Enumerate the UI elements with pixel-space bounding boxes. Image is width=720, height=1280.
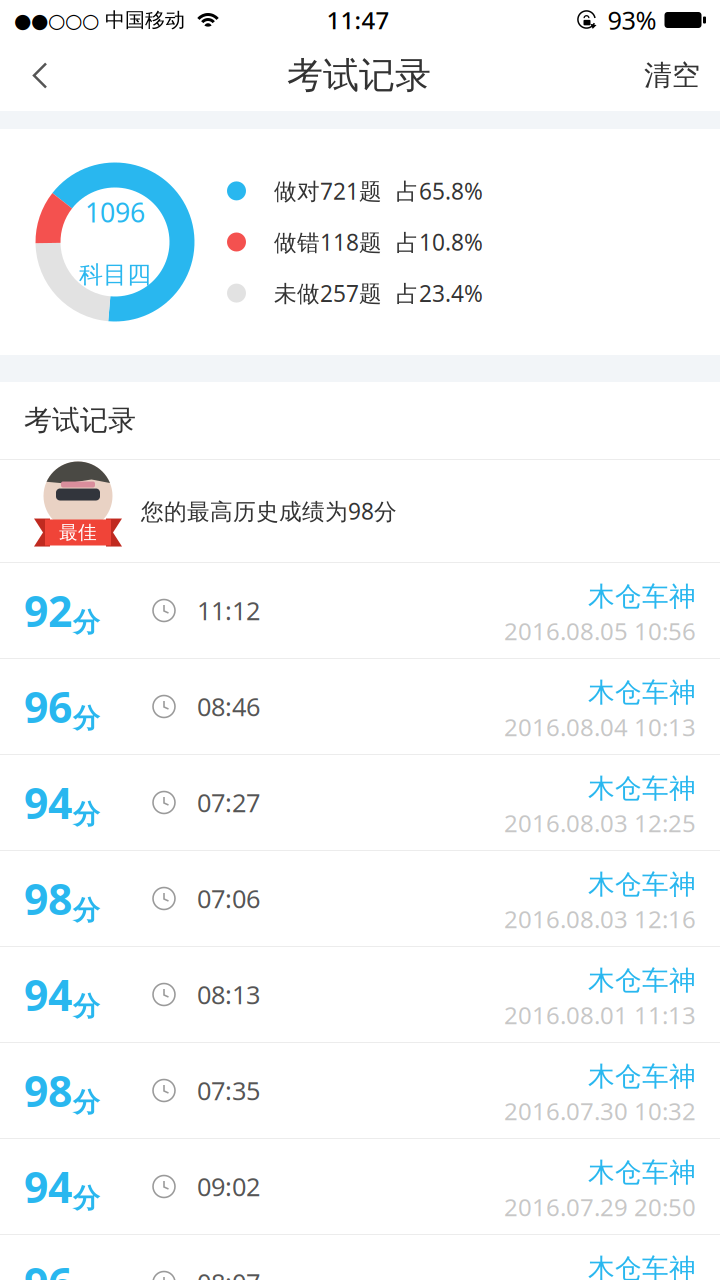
staticText: 96 [24,1254,72,1280]
staticText: 做错118题 占10.8% [274,227,483,257]
staticText: 09:02 [197,1170,260,1203]
staticText: 木仓车神 [588,964,696,997]
button[interactable]: 96 [0,1235,720,1280]
staticText: 98 [24,870,72,927]
staticText: 木仓车神 [588,676,696,709]
staticText: 木仓车神 [588,1252,696,1280]
button[interactable]: Back [20,52,92,98]
button[interactable]: 94 [0,947,720,1043]
staticText: 94 [24,966,72,1023]
staticText: 2016.08.03 12:16 [504,903,696,935]
staticText: 2016.07.29 20:50 [504,1191,696,1223]
staticText: 分 [73,1086,100,1119]
staticText: 木仓车神 [588,580,696,613]
staticText: 您的最高历史成绩为98分 [141,496,397,526]
button[interactable]: 清空 [626,52,700,98]
staticText: 分 [73,990,100,1023]
staticText: 94 [24,774,72,831]
staticText: 07:35 [197,1074,260,1107]
staticText: 木仓车神 [588,1060,696,1093]
staticText: 2016.07.30 10:32 [504,1095,696,1127]
button[interactable]: 98 [0,851,720,947]
staticText: 08:46 [197,690,260,723]
staticText: 最佳 [59,521,97,544]
staticText: 木仓车神 [588,772,696,805]
staticText: 未做257题 占23.4% [274,278,483,308]
staticText: 92 [24,582,72,639]
staticText: 分 [73,702,100,735]
staticText: 08:13 [197,978,260,1011]
staticText: 94 [24,1158,72,1215]
staticText: 分 [73,798,100,831]
staticText: 做对721题 占65.8% [274,176,483,206]
staticText: 木仓车神 [588,1156,696,1189]
staticText: 93% [607,3,656,37]
button[interactable]: 98 [0,1043,720,1139]
staticText: 98 [24,1062,72,1119]
staticText: 08:07 [197,1266,260,1280]
staticText: 11:47 [326,4,389,36]
staticText: 07:27 [197,786,260,819]
staticText: 2016.08.03 12:25 [504,807,696,839]
staticText: 11:12 [197,594,260,627]
staticText: 考试记录 [287,53,431,98]
staticText: 2016.08.05 10:56 [504,615,696,647]
staticText: 分 [73,1182,100,1215]
button[interactable]: 94 [0,1139,720,1235]
staticText: 96 [24,678,72,735]
button[interactable]: 96 [0,659,720,755]
staticText: ●●○○○ 中国移动 [14,8,185,32]
staticText: 木仓车神 [588,868,696,901]
staticText: 2016.08.04 10:13 [504,711,696,743]
button[interactable]: 94 [0,755,720,851]
staticText: 清空 [644,58,700,93]
staticText: 07:06 [197,882,260,915]
staticText: 分 [73,606,100,639]
button[interactable]: 92 [0,563,720,659]
staticText: 2016.08.01 11:13 [504,999,696,1031]
staticText: 分 [73,894,100,927]
staticText: 1096 [85,195,145,230]
staticText: 科目四 [79,260,151,289]
staticText: 考试记录 [24,403,136,438]
